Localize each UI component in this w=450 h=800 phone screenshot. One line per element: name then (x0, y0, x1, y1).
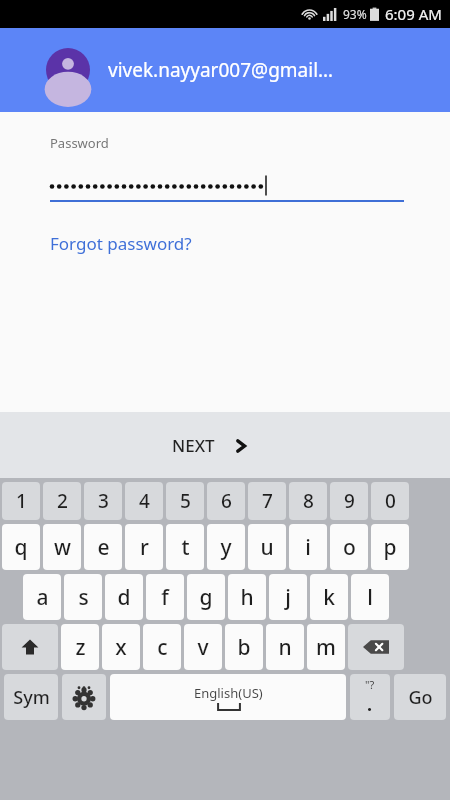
staticText: 93% (343, 6, 367, 22)
button[interactable]: 1 (2, 482, 40, 520)
button[interactable] (50, 170, 404, 200)
staticText: l (367, 583, 373, 612)
button[interactable]: English(US) (110, 674, 346, 720)
staticText: p (383, 533, 397, 562)
button[interactable]: f (146, 574, 184, 620)
button[interactable]: NEXT (172, 434, 249, 457)
staticText: g (199, 583, 213, 612)
staticText: i (305, 533, 311, 562)
staticText: q (14, 533, 28, 562)
staticText: j (285, 583, 291, 612)
button[interactable]: Go (394, 674, 446, 720)
button[interactable]: o (330, 524, 368, 570)
button[interactable]: Forgot password? (50, 232, 192, 255)
button[interactable]: d (105, 574, 143, 620)
button[interactable]: q (2, 524, 40, 570)
button[interactable]: t (166, 524, 204, 570)
button[interactable]: v (184, 624, 222, 670)
button[interactable]: 6 (207, 482, 245, 520)
button[interactable]: e (84, 524, 122, 570)
button[interactable]: i (289, 524, 327, 570)
staticText: a (36, 583, 49, 612)
staticText: z (75, 633, 86, 662)
staticText: "? (365, 677, 375, 692)
staticText: Go (408, 685, 433, 710)
staticText: f (161, 583, 169, 612)
staticText: r (140, 533, 149, 562)
button[interactable]: u (248, 524, 286, 570)
button[interactable]: m (307, 624, 345, 670)
staticText: e (97, 533, 110, 562)
button[interactable]: w (43, 524, 81, 570)
staticText: h (240, 583, 254, 612)
button[interactable]: Backspace (348, 624, 404, 670)
staticText: 4 (139, 488, 150, 514)
button[interactable]: b (225, 624, 263, 670)
button[interactable]: 4 (125, 482, 163, 520)
staticText: Password (50, 134, 109, 152)
staticText: x (115, 633, 127, 662)
button[interactable]: 9 (330, 482, 368, 520)
button[interactable]: 8 (289, 482, 327, 520)
staticText: u (260, 533, 274, 562)
button[interactable]: z (61, 624, 99, 670)
staticText: o (343, 533, 356, 562)
button[interactable]: Shift (2, 624, 58, 670)
staticText: 5 (180, 488, 191, 514)
staticText: 9 (344, 488, 355, 514)
staticText: w (54, 533, 71, 562)
button[interactable]: Period and punctuation (350, 674, 390, 720)
staticText: s (78, 583, 89, 612)
staticText: k (323, 583, 335, 612)
staticText: y (220, 533, 232, 562)
staticText: m (316, 633, 336, 662)
button[interactable]: 2 (43, 482, 81, 520)
staticText: English(US) (194, 684, 263, 702)
button[interactable]: k (310, 574, 348, 620)
button[interactable]: Sym (4, 674, 58, 720)
button[interactable]: 7 (248, 482, 286, 520)
staticText: NEXT (172, 434, 215, 457)
button[interactable]: n (266, 624, 304, 670)
button[interactable]: l (351, 574, 389, 620)
staticText: 2 (57, 488, 68, 514)
staticText: 8 (303, 488, 314, 514)
staticText: Sym (13, 685, 50, 710)
staticText: 7 (262, 488, 273, 514)
button[interactable]: 5 (166, 482, 204, 520)
staticText: . (367, 692, 373, 717)
staticText: b (237, 633, 251, 662)
button[interactable]: j (269, 574, 307, 620)
staticText: c (157, 633, 168, 662)
button[interactable]: a (23, 574, 61, 620)
button[interactable]: 0 (371, 482, 409, 520)
button[interactable]: s (64, 574, 102, 620)
button[interactable]: p (371, 524, 409, 570)
staticText: d (117, 583, 131, 612)
button[interactable]: r (125, 524, 163, 570)
staticText: n (278, 633, 292, 662)
staticText: v (197, 633, 209, 662)
staticText: 6:09 AM (385, 4, 442, 24)
button[interactable]: g (187, 574, 225, 620)
button[interactable]: c (143, 624, 181, 670)
staticText: 6 (221, 488, 232, 514)
button[interactable]: x (102, 624, 140, 670)
button[interactable]: h (228, 574, 266, 620)
button[interactable]: 3 (84, 482, 122, 520)
button[interactable]: Settings (62, 674, 106, 720)
staticText: 0 (385, 488, 396, 514)
button[interactable]: y (207, 524, 245, 570)
staticText: vivek.nayyar007@gmail… (108, 57, 334, 83)
staticText: 3 (98, 488, 109, 514)
staticText: t (181, 533, 190, 562)
staticText: 1 (16, 488, 27, 514)
